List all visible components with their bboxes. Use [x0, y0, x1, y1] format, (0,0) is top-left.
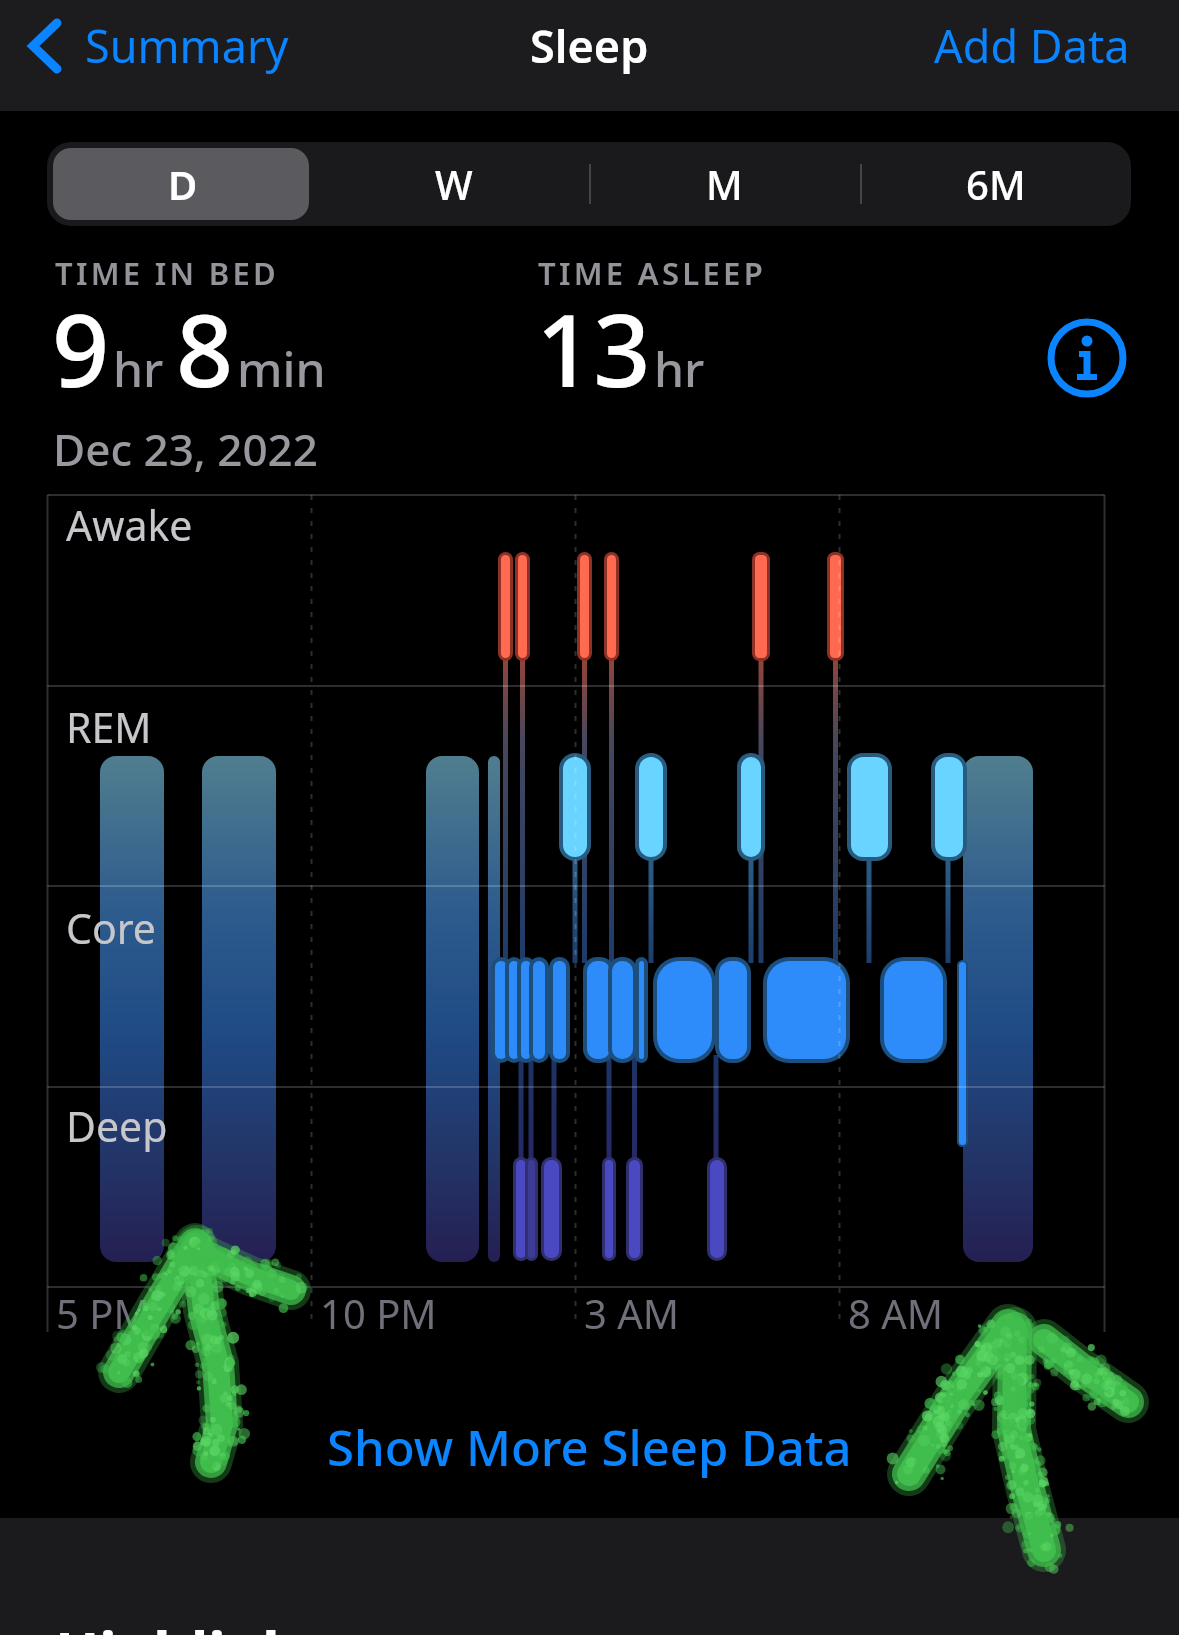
button[interactable]: M	[589, 142, 860, 226]
staticText: Sleep	[530, 15, 649, 76]
staticText: W	[435, 157, 473, 211]
staticText: 10 PM	[320, 1286, 437, 1340]
button[interactable]: Show More Sleep Data	[327, 1414, 852, 1481]
staticText: M	[706, 157, 743, 211]
staticText: 5 PM	[56, 1286, 150, 1340]
staticText: 9	[52, 280, 110, 416]
button[interactable]: D	[47, 142, 318, 226]
staticText: 3 AM	[584, 1286, 680, 1340]
staticText: hr	[654, 336, 705, 401]
staticText: REM	[66, 699, 152, 755]
button[interactable]: W	[318, 142, 589, 226]
staticText: Highlights	[55, 1612, 355, 1635]
staticText: Deep	[66, 1098, 168, 1154]
button[interactable]: Summary	[27, 15, 289, 76]
staticText: Dec 23, 2022	[53, 419, 318, 479]
staticText: 8 AM	[848, 1286, 944, 1340]
staticText: Core	[66, 900, 156, 956]
button[interactable]: Add Data	[934, 15, 1130, 76]
staticText: D	[168, 157, 198, 211]
button[interactable]: 6M	[860, 142, 1131, 226]
staticText: Awake	[66, 497, 193, 553]
staticText: Add Data	[934, 15, 1130, 76]
staticText: TIME ASLEEP	[538, 252, 767, 294]
staticText: TIME IN BED	[55, 252, 280, 294]
staticText: 13	[536, 280, 651, 416]
button[interactable]	[1049, 320, 1125, 396]
staticText: min	[237, 336, 326, 401]
staticText: 8	[176, 280, 234, 416]
staticText: 6M	[966, 157, 1026, 211]
staticText: Show More Sleep Data	[327, 1414, 852, 1481]
staticText: Summary	[85, 15, 289, 76]
staticText: hr	[113, 336, 164, 401]
